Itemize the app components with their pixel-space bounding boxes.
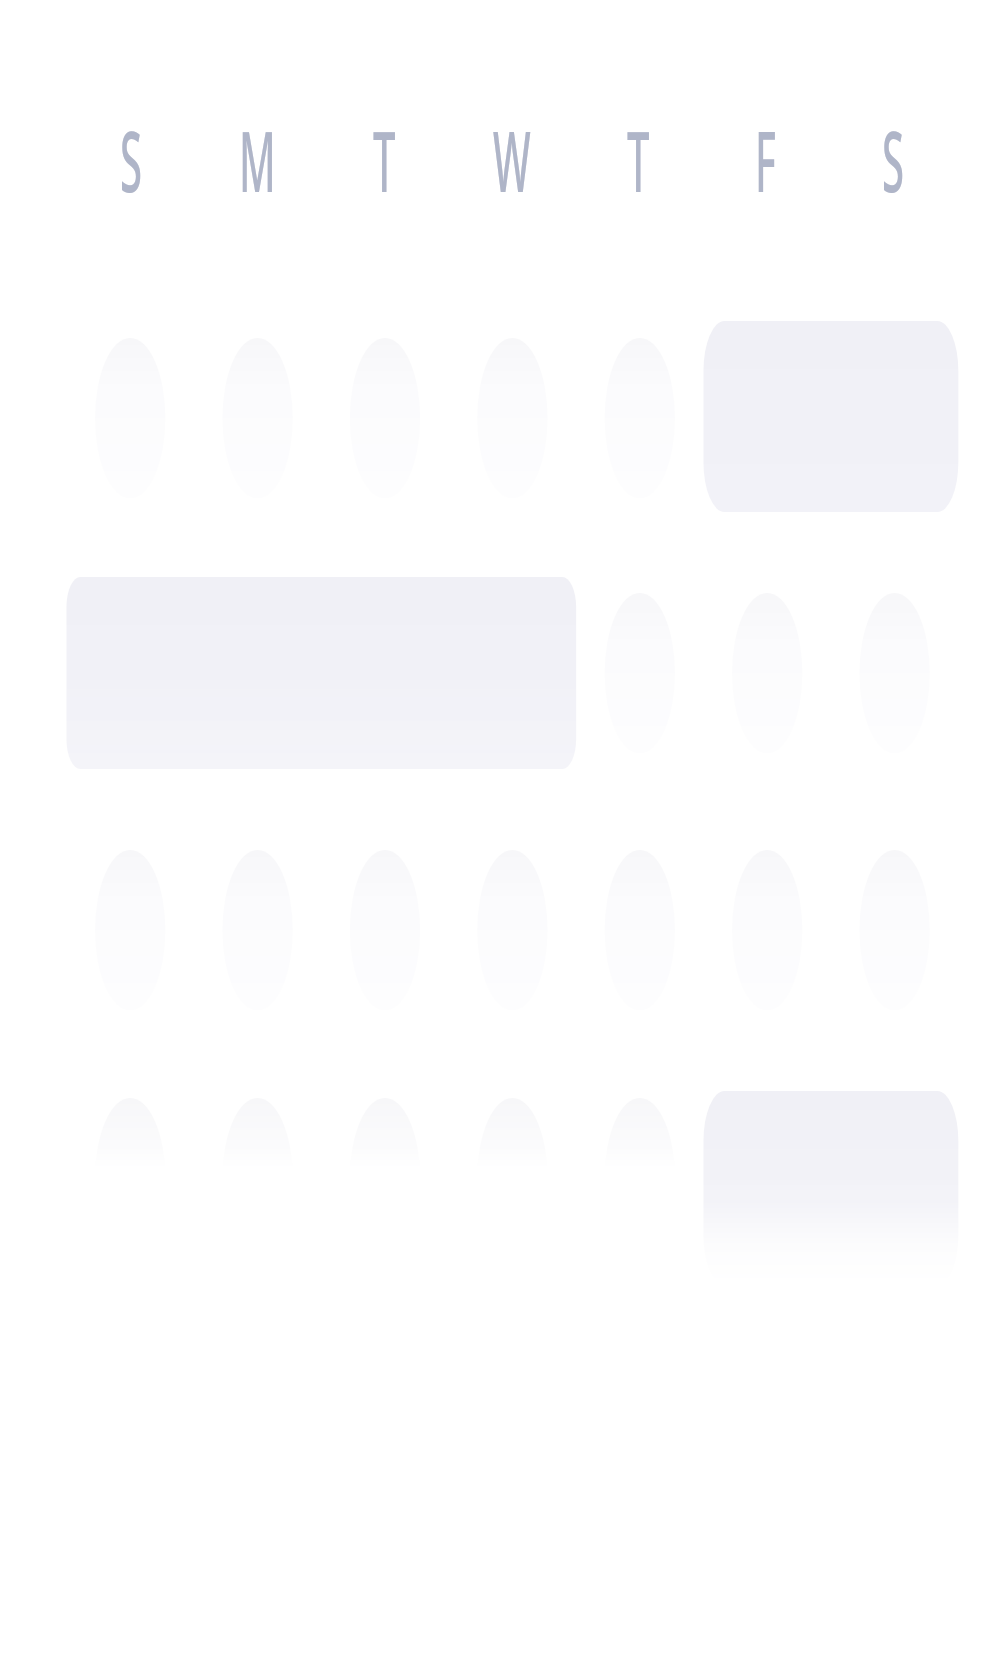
button[interactable]: Tuesday xyxy=(321,127,448,189)
button[interactable]: Monday xyxy=(194,127,321,189)
staticText: M xyxy=(239,101,276,215)
staticText: T xyxy=(373,101,396,215)
staticText: W xyxy=(493,101,531,215)
button[interactable]: Day 28, selected xyxy=(829,1098,956,1258)
button[interactable]: Thursday xyxy=(575,127,702,189)
staticText: T xyxy=(627,101,650,215)
staticText: F xyxy=(755,101,777,215)
button[interactable]: Sunday xyxy=(67,127,194,189)
staticText: S xyxy=(120,101,142,215)
button[interactable]: Saturday xyxy=(829,127,956,189)
button[interactable]: Wednesday xyxy=(448,127,575,189)
staticText: S xyxy=(882,101,904,215)
button[interactable]: Friday xyxy=(702,127,829,189)
button[interactable]: Day 27, selected xyxy=(702,1098,829,1258)
